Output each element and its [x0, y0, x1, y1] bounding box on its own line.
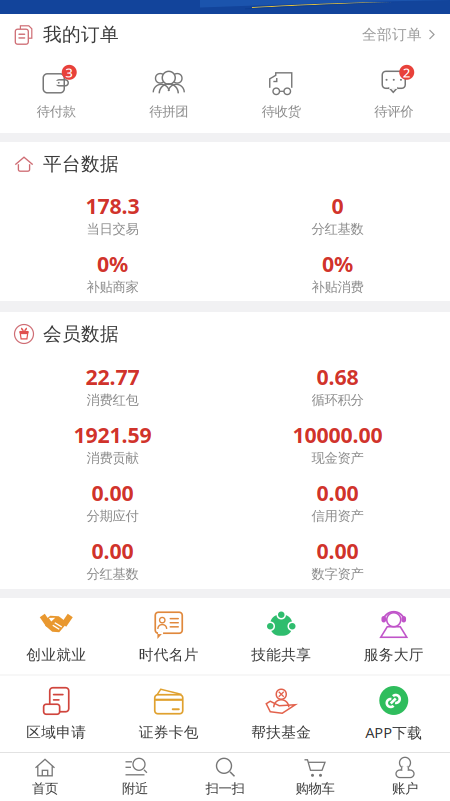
staticText: 10000.00: [292, 421, 382, 449]
button[interactable]: 账户: [360, 753, 450, 801]
staticText: 帮扶基金: [251, 723, 311, 741]
staticText: 0.68: [316, 363, 358, 391]
staticText: 区域申请: [26, 723, 86, 741]
staticText: 当日交易: [86, 221, 138, 237]
staticText: 待付款: [37, 103, 76, 120]
button[interactable]: 2: [337, 55, 450, 133]
staticText: 账户: [392, 780, 418, 797]
staticText: 补贴消费: [311, 279, 363, 295]
staticText: 22.77: [85, 363, 139, 391]
staticText: 分期应付: [86, 508, 138, 524]
button[interactable]: 购物车: [270, 753, 360, 801]
staticText: 时代名片: [139, 646, 199, 664]
button[interactable]: 附近: [90, 753, 180, 801]
button[interactable]: 待拼团: [112, 55, 225, 133]
staticText: 1921.59: [73, 421, 151, 449]
staticText: 0.00: [91, 479, 133, 507]
staticText: 0%: [97, 250, 128, 278]
staticText: APP下载: [365, 722, 422, 742]
staticText: 购物车: [295, 780, 334, 797]
staticText: 2: [403, 63, 411, 81]
staticText: 待拼团: [149, 103, 188, 120]
staticText: 我的订单: [43, 23, 119, 46]
staticText: 0.00: [316, 537, 358, 565]
staticText: 信用资产: [311, 508, 363, 524]
staticText: 会员数据: [43, 322, 119, 345]
button[interactable]: 首页: [0, 753, 90, 801]
staticText: 待收货: [262, 103, 301, 120]
staticText: 0%: [322, 250, 353, 278]
button[interactable]: APP下载: [337, 675, 450, 752]
button[interactable]: 服务大厅: [337, 598, 450, 674]
button[interactable]: 证券卡包: [112, 675, 225, 752]
staticText: 消费红包: [86, 392, 138, 408]
staticText: 技能共享: [251, 646, 311, 664]
staticText: 创业就业: [26, 646, 86, 664]
button[interactable]: 我的订单: [0, 14, 450, 55]
button[interactable]: 区域申请: [0, 675, 112, 752]
button[interactable]: 时代名片: [112, 598, 225, 674]
staticText: 附近: [122, 780, 148, 797]
staticText: 循环积分: [311, 392, 363, 408]
staticText: 平台数据: [43, 152, 119, 175]
staticText: 消费贡献: [86, 450, 138, 466]
button[interactable]: 技能共享: [225, 598, 337, 674]
staticText: 0.00: [316, 479, 358, 507]
staticText: 0.00: [91, 537, 133, 565]
staticText: 首页: [32, 780, 58, 797]
staticText: 服务大厅: [364, 646, 424, 664]
staticText: 待评价: [374, 103, 413, 120]
staticText: 0: [331, 192, 343, 220]
staticText: 全部订单: [362, 25, 422, 43]
button[interactable]: 3: [0, 55, 112, 133]
staticText: 数字资产: [311, 566, 363, 582]
button[interactable]: 待收货: [225, 55, 337, 133]
staticText: 补贴商家: [86, 279, 138, 295]
staticText: 分红基数: [311, 221, 363, 237]
staticText: 178.3: [85, 192, 139, 220]
button[interactable]: 创业就业: [0, 598, 112, 674]
staticText: 3: [65, 63, 73, 81]
staticText: 现金资产: [311, 450, 363, 466]
staticText: 证券卡包: [139, 723, 199, 741]
button[interactable]: 扫一扫: [180, 753, 270, 801]
button[interactable]: 帮扶基金: [225, 675, 337, 752]
staticText: 扫一扫: [205, 780, 244, 797]
staticText: 分红基数: [86, 566, 138, 582]
